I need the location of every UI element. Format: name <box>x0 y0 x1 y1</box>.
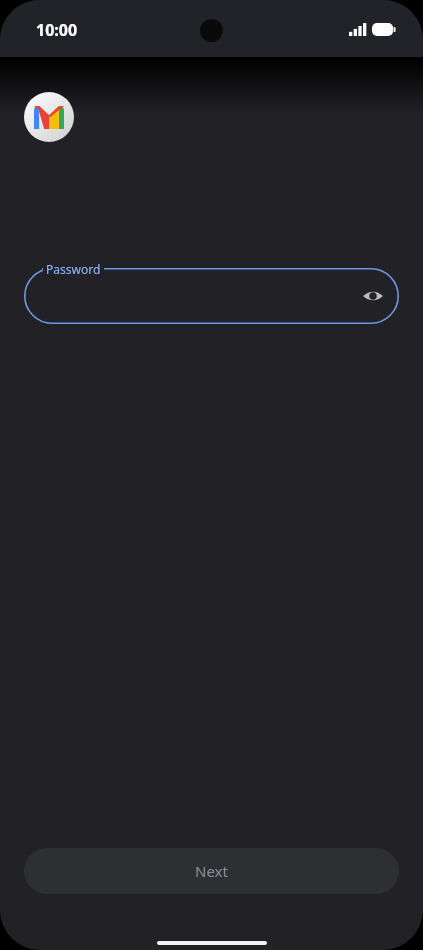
button[interactable]: Next <box>24 848 399 894</box>
button[interactable]: Show password <box>353 276 393 316</box>
staticText: Next <box>195 861 228 881</box>
staticText: 10:00 <box>36 19 78 41</box>
staticText: Password <box>46 261 101 277</box>
other: Gmail <box>24 92 74 142</box>
button[interactable]: Password <box>24 268 399 324</box>
